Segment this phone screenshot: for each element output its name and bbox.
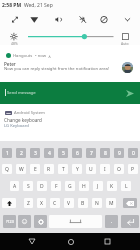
staticText: 2 xyxy=(20,150,23,157)
button[interactable]: 0 xyxy=(128,148,138,158)
button[interactable]: Back xyxy=(22,233,42,250)
staticText: 2:58 PM xyxy=(2,2,22,9)
button[interactable]: Rotate xyxy=(0,12,24,27)
button[interactable]: 8 xyxy=(100,148,110,158)
staticText: I xyxy=(104,166,106,173)
staticText: X xyxy=(40,200,43,207)
button[interactable]: G xyxy=(65,181,75,191)
button[interactable]: Recents xyxy=(97,233,117,250)
button[interactable]: 4 xyxy=(44,148,54,158)
staticText: 9 xyxy=(118,150,121,157)
staticText: 5 xyxy=(62,150,65,157)
staticText: U xyxy=(89,166,93,173)
button[interactable]: Settings xyxy=(34,215,47,228)
staticText: Y xyxy=(76,166,79,173)
button[interactable]: 9 xyxy=(114,148,124,158)
staticText: Change keyboard xyxy=(4,117,42,123)
staticText: 6 xyxy=(76,150,79,157)
button[interactable]: T xyxy=(58,164,68,174)
button[interactable]: C xyxy=(50,198,60,208)
staticText: H xyxy=(82,183,86,190)
staticText: P xyxy=(131,166,135,173)
button[interactable]: S xyxy=(23,181,33,191)
staticText: 3 xyxy=(34,150,37,157)
button[interactable]: Shift xyxy=(2,198,16,208)
button[interactable]: 5 xyxy=(58,148,68,158)
button[interactable]: 6 xyxy=(72,148,82,158)
button[interactable]: P xyxy=(128,164,138,174)
staticText: S xyxy=(27,183,30,190)
staticText: Send message xyxy=(7,90,36,96)
button[interactable]: N xyxy=(92,198,102,208)
button[interactable]: Wi-Fi xyxy=(24,12,48,27)
staticText: Now you can reply straight from the noti… xyxy=(4,66,110,72)
staticText: E xyxy=(34,166,37,173)
button[interactable]: Backspace xyxy=(123,198,137,208)
staticText: W xyxy=(19,166,24,173)
staticText: G xyxy=(68,183,72,190)
staticText: Q xyxy=(5,166,9,173)
staticText: R xyxy=(47,166,51,173)
staticText: L xyxy=(125,183,128,190)
button[interactable]: Enter xyxy=(121,215,139,228)
button[interactable]: 3 xyxy=(30,148,40,158)
button[interactable]: F xyxy=(51,181,61,191)
staticText: D xyxy=(40,183,44,190)
button[interactable]: Symbols xyxy=(3,215,16,228)
button[interactable]: J xyxy=(93,181,103,191)
staticText: 8 xyxy=(104,150,107,157)
staticText: 1 xyxy=(6,150,9,157)
button[interactable]: Sound xyxy=(48,12,71,27)
staticText: LG Keyboard xyxy=(4,123,29,129)
button[interactable]: Airplane mode xyxy=(71,12,94,27)
staticText: 48% xyxy=(11,41,18,46)
button[interactable]: Android System xyxy=(0,104,140,141)
button[interactable]: 2 xyxy=(16,148,26,158)
button[interactable]: Send message xyxy=(0,82,140,104)
staticText: Peter xyxy=(4,61,16,67)
staticText: A xyxy=(13,183,17,190)
button[interactable]: V xyxy=(64,198,74,208)
button[interactable]: Space xyxy=(49,215,102,228)
staticText: Z xyxy=(27,200,30,207)
button[interactable]: I xyxy=(100,164,110,174)
button[interactable]: H xyxy=(79,181,89,191)
button[interactable]: M xyxy=(106,198,116,208)
button[interactable]: Hangouts xyxy=(0,48,140,82)
button[interactable]: Q xyxy=(2,164,12,174)
button[interactable]: Do not disturb xyxy=(94,12,117,27)
staticText: Wed, 21 Sep xyxy=(24,2,53,9)
button[interactable]: U xyxy=(86,164,96,174)
button[interactable]: X xyxy=(37,198,46,208)
button[interactable]: W xyxy=(16,164,26,174)
button[interactable]: R xyxy=(44,164,54,174)
button[interactable]: 7 xyxy=(86,148,96,158)
button[interactable]: B xyxy=(78,198,88,208)
staticText: K xyxy=(110,183,114,190)
button[interactable]: K xyxy=(107,181,117,191)
button[interactable]: Home xyxy=(61,233,81,250)
button[interactable]: 1 xyxy=(2,148,12,158)
button[interactable]: L xyxy=(121,181,131,191)
staticText: Auto xyxy=(121,41,129,46)
button[interactable]: Emoji xyxy=(18,215,31,228)
button[interactable]: D xyxy=(37,181,47,191)
staticText: . xyxy=(111,218,113,225)
staticText: • now xyxy=(35,53,46,59)
staticText: 7 xyxy=(90,150,93,157)
button[interactable]: Z xyxy=(24,198,33,208)
button[interactable]: A xyxy=(10,181,19,191)
staticText: ?123 xyxy=(6,219,14,224)
staticText: V xyxy=(67,200,71,207)
staticText: 0 xyxy=(132,150,135,157)
staticText: ∧ xyxy=(48,54,52,59)
staticText: M xyxy=(109,200,114,207)
button[interactable]: Expand xyxy=(117,12,140,27)
button[interactable]: O xyxy=(114,164,124,174)
button[interactable]: Auto brightness xyxy=(118,30,136,44)
staticText: O xyxy=(117,166,121,173)
button[interactable]: Period xyxy=(105,215,118,228)
button[interactable]: Y xyxy=(72,164,82,174)
staticText: C xyxy=(53,200,57,207)
button[interactable]: E xyxy=(30,164,40,174)
